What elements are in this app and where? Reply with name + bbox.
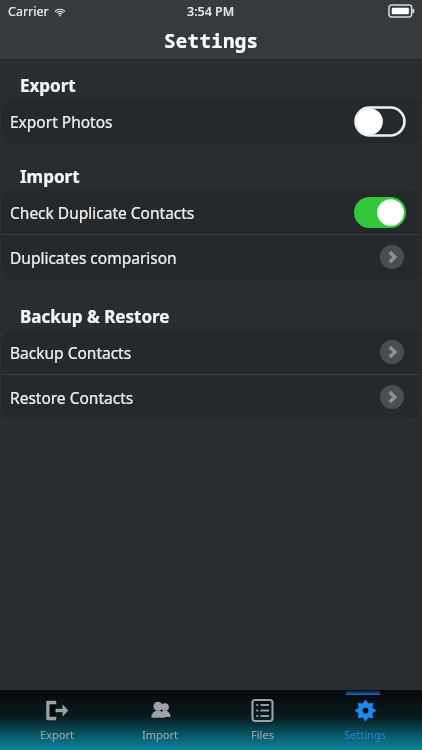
staticText: Export	[40, 727, 74, 742]
staticText: Backup Contacts	[10, 342, 132, 363]
staticText: Import	[20, 165, 80, 188]
staticText: Import	[142, 727, 178, 742]
button[interactable]: Import	[115, 690, 205, 750]
staticText: Duplicates comparison	[10, 247, 177, 268]
staticText: Files	[251, 727, 274, 742]
staticText: Settings	[164, 28, 259, 54]
staticText: 3:54 PM	[187, 3, 235, 20]
button[interactable]: Check Duplicate Contacts	[2, 190, 420, 234]
staticText: Carrier	[8, 3, 49, 20]
button[interactable]: Files	[217, 690, 307, 750]
button[interactable]: Export	[12, 690, 102, 750]
staticText: Check Duplicate Contacts	[10, 202, 195, 223]
button[interactable]: Restore Contacts	[2, 375, 420, 419]
other: Open Duplicates comparison	[380, 245, 404, 269]
staticText: Restore Contacts	[10, 387, 134, 408]
staticText: Export	[20, 74, 76, 97]
button[interactable]: Duplicates comparison	[2, 235, 420, 279]
other: Open Backup Contacts	[380, 340, 404, 364]
staticText: Settings	[344, 727, 386, 742]
button[interactable]: Settings	[320, 690, 410, 750]
staticText: Backup & Restore	[20, 305, 170, 328]
button[interactable]: Export Photos	[2, 99, 420, 143]
button[interactable]: Backup Contacts	[2, 330, 420, 374]
other: Open Restore Contacts	[380, 385, 404, 409]
staticText: Export Photos	[10, 111, 113, 132]
other: Off	[354, 106, 406, 137]
other: On	[354, 197, 406, 228]
